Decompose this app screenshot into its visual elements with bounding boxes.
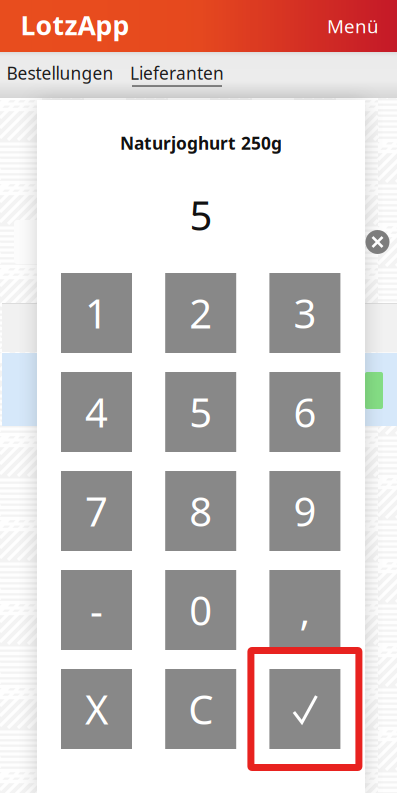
button[interactable]: 3 xyxy=(269,273,340,353)
staticText: 8 xyxy=(189,484,212,537)
button[interactable]: 1 xyxy=(61,273,132,353)
button[interactable]: 4 xyxy=(61,372,132,452)
button[interactable]: - xyxy=(61,570,132,650)
button[interactable]: 0 xyxy=(165,570,236,650)
staticText: 5 xyxy=(189,385,212,438)
button[interactable]: 9 xyxy=(269,471,340,551)
staticText: X xyxy=(85,682,108,735)
staticText: 5 xyxy=(189,188,212,241)
button[interactable]: Close xyxy=(365,230,389,254)
staticText: Bestellungen xyxy=(6,61,113,84)
staticText: C xyxy=(188,682,213,735)
button[interactable]: C xyxy=(165,669,236,749)
staticText: Menü xyxy=(327,14,379,38)
button[interactable]: Confirm xyxy=(269,669,340,749)
staticText: , xyxy=(299,583,310,636)
staticText: 7 xyxy=(85,484,108,537)
button[interactable]: , xyxy=(269,570,340,650)
staticText: 0 xyxy=(189,583,212,636)
staticText: 3 xyxy=(293,286,316,339)
staticText: 4 xyxy=(85,385,108,438)
button[interactable]: 6 xyxy=(269,372,340,452)
staticText: Naturjoghurt 250g xyxy=(120,131,282,154)
button[interactable]: 2 xyxy=(165,273,236,353)
button[interactable]: X xyxy=(61,669,132,749)
button[interactable]: LotzApp xyxy=(16,7,133,43)
staticText: 2 xyxy=(189,286,212,339)
staticText: 9 xyxy=(293,484,316,537)
button[interactable]: Lieferanten xyxy=(130,61,224,86)
staticText: 6 xyxy=(293,385,316,438)
staticText: Lieferanten xyxy=(130,61,224,84)
button[interactable]: 8 xyxy=(165,471,236,551)
staticText: - xyxy=(90,583,103,636)
staticText: 1 xyxy=(85,286,108,339)
button[interactable]: 5 xyxy=(165,372,236,452)
button[interactable]: Menü xyxy=(321,10,385,42)
staticText: LotzApp xyxy=(20,7,129,43)
button[interactable]: Bestellungen xyxy=(6,61,113,84)
button[interactable]: 7 xyxy=(61,471,132,551)
